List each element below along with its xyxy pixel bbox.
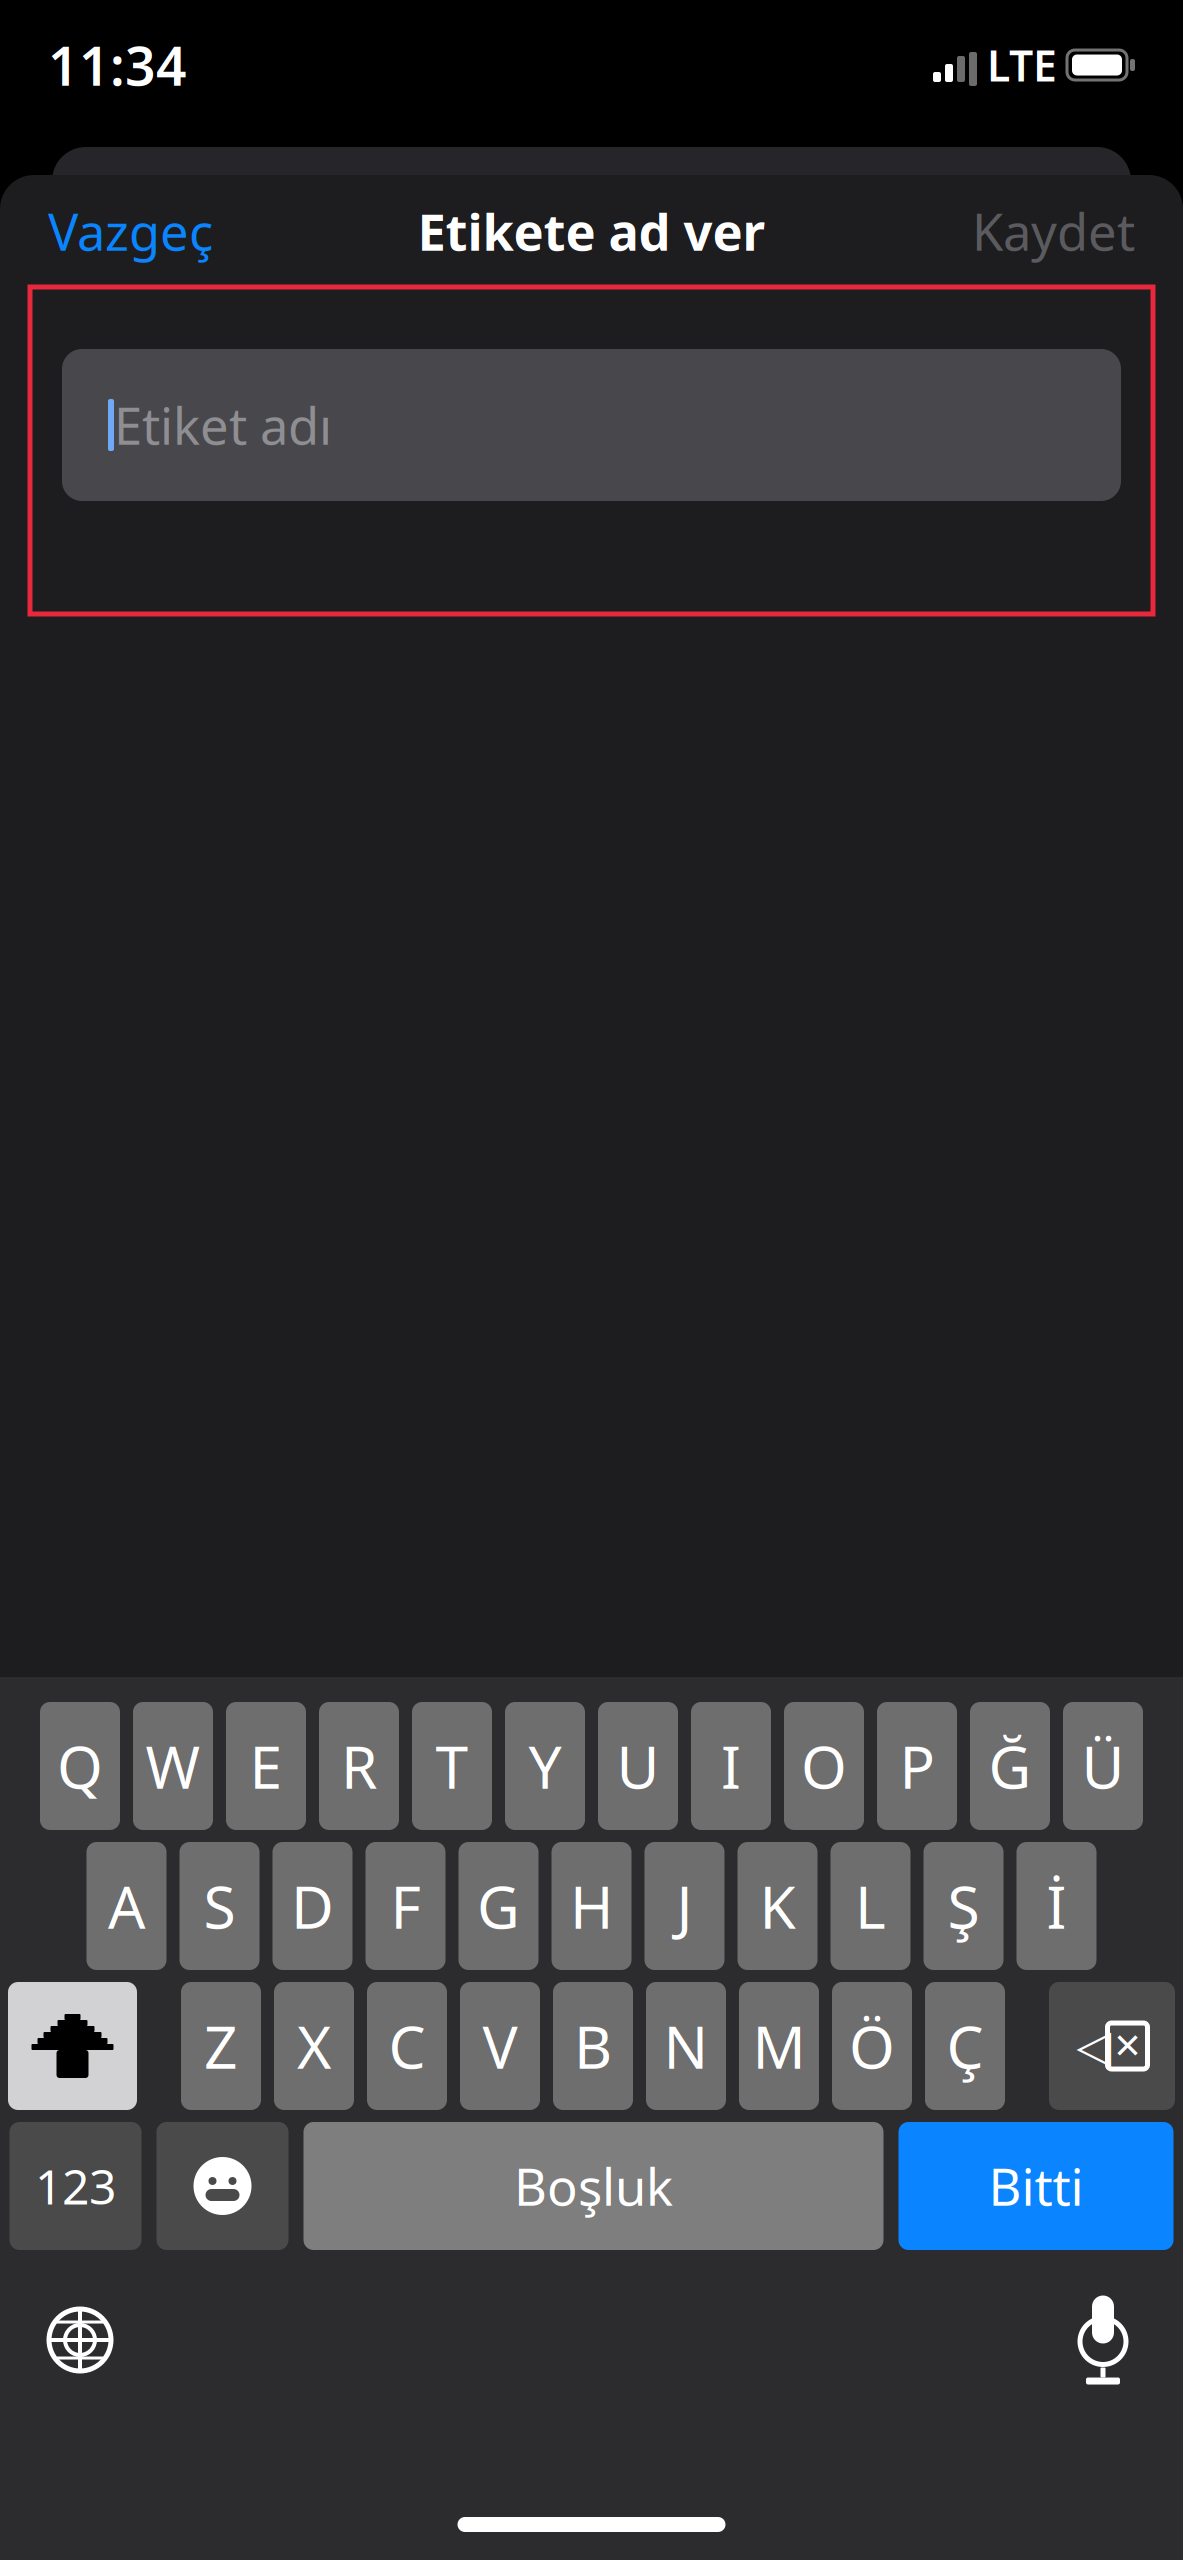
button[interactable]: X	[274, 1982, 354, 2110]
button[interactable]: B	[553, 1982, 633, 2110]
button[interactable]: P	[877, 1702, 957, 1830]
staticText: P	[899, 1727, 934, 1805]
button[interactable]: Y	[505, 1702, 585, 1830]
button[interactable]: T	[412, 1702, 492, 1830]
staticText: 123	[35, 2154, 116, 2218]
button[interactable]: L	[830, 1842, 910, 1970]
button[interactable]: N	[646, 1982, 726, 2110]
staticText: ✕	[1113, 2026, 1142, 2066]
staticText: N	[663, 2007, 708, 2085]
button[interactable]: E	[226, 1702, 306, 1830]
staticText: Boşluk	[514, 2152, 673, 2220]
staticText: X	[297, 2007, 331, 2085]
button[interactable]: Ö	[832, 1982, 912, 2110]
staticText: Q	[57, 1727, 103, 1805]
button[interactable]: Ş	[923, 1842, 1003, 1970]
staticText: Y	[528, 1727, 561, 1805]
button[interactable]: U	[598, 1702, 678, 1830]
button[interactable]: Kaydet	[964, 187, 1143, 275]
staticText: M	[752, 2007, 805, 2085]
staticText: L	[855, 1867, 886, 1945]
button[interactable]: W	[133, 1702, 213, 1830]
button[interactable]: Bitti	[898, 2122, 1173, 2250]
staticText: Bitti	[988, 2152, 1083, 2220]
staticText: J	[676, 1867, 692, 1945]
staticText: V	[482, 2007, 517, 2085]
button[interactable]: H	[551, 1842, 631, 1970]
button[interactable]: Emoji	[156, 2122, 288, 2250]
button[interactable]: Next keyboard	[38, 2298, 122, 2382]
staticText: S	[203, 1867, 235, 1945]
staticText: Z	[204, 2007, 238, 2085]
staticText: Ü	[1081, 1727, 1124, 1805]
staticText: Vazgeç	[48, 197, 213, 265]
staticText: ◁	[1076, 2020, 1111, 2072]
button[interactable]: Delete	[1049, 1982, 1175, 2110]
button[interactable]: J	[644, 1842, 724, 1970]
staticText: K	[759, 1867, 795, 1945]
button[interactable]: Boşluk	[303, 2122, 883, 2250]
staticText: A	[108, 1867, 145, 1945]
staticText: Ö	[849, 2007, 895, 2085]
staticText: Etiket adı	[114, 391, 332, 459]
staticText: C	[388, 2007, 425, 2085]
button[interactable]: Etiket adı	[62, 349, 1121, 501]
staticText: LTE	[987, 37, 1057, 93]
button[interactable]: Z	[181, 1982, 261, 2110]
staticText: Ç	[946, 2007, 983, 2085]
button[interactable]: 123	[9, 2122, 141, 2250]
button[interactable]: Ğ	[970, 1702, 1050, 1830]
staticText: H	[570, 1867, 613, 1945]
staticText: Kaydet	[972, 197, 1135, 265]
staticText: I	[721, 1727, 741, 1805]
staticText: Etikete ad ver	[417, 197, 765, 265]
staticText: Ş	[947, 1867, 979, 1945]
staticText: T	[435, 1727, 468, 1805]
staticText: R	[341, 1727, 377, 1805]
button[interactable]: V	[460, 1982, 540, 2110]
button[interactable]: M	[739, 1982, 819, 2110]
button[interactable]: K	[737, 1842, 817, 1970]
button[interactable]: D	[272, 1842, 352, 1970]
button[interactable]: G	[458, 1842, 538, 1970]
button[interactable]: Ç	[925, 1982, 1005, 2110]
staticText: B	[574, 2007, 612, 2085]
staticText: O	[801, 1727, 847, 1805]
button[interactable]: Vazgeç	[40, 187, 221, 275]
staticText: G	[477, 1867, 520, 1945]
button[interactable]: İ	[1016, 1842, 1096, 1970]
staticText: U	[616, 1727, 659, 1805]
staticText: İ	[1046, 1867, 1066, 1945]
button[interactable]: Shift	[8, 1982, 137, 2110]
button[interactable]: I	[691, 1702, 771, 1830]
button[interactable]: C	[367, 1982, 447, 2110]
button[interactable]: A	[86, 1842, 166, 1970]
staticText: Ğ	[988, 1727, 1031, 1805]
button[interactable]: Dictate	[1061, 2292, 1145, 2388]
staticText: W	[145, 1727, 200, 1805]
staticText: E	[249, 1727, 282, 1805]
staticText: F	[390, 1867, 420, 1945]
staticText: D	[291, 1867, 334, 1945]
button[interactable]: F	[365, 1842, 445, 1970]
button[interactable]: S	[179, 1842, 259, 1970]
button[interactable]: Ü	[1063, 1702, 1143, 1830]
button[interactable]: R	[319, 1702, 399, 1830]
button[interactable]: Q	[40, 1702, 120, 1830]
button[interactable]: O	[784, 1702, 864, 1830]
staticText: 11:34	[48, 30, 187, 100]
